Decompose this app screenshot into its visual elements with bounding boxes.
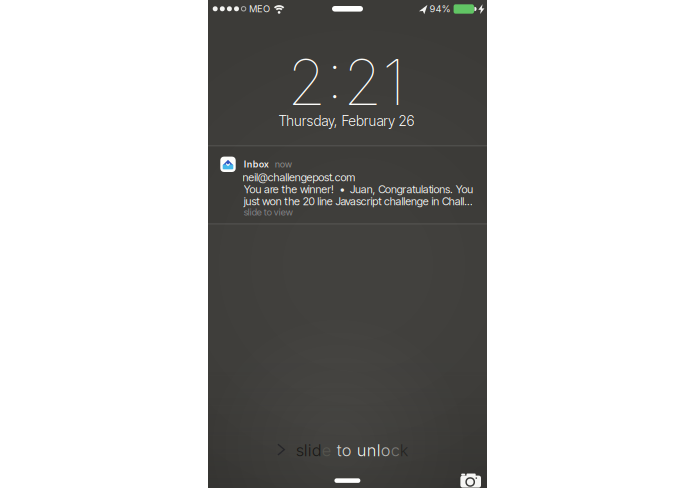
staticText: e (322, 440, 332, 460)
button[interactable]: Inbox (208, 145, 487, 224)
staticText: now (275, 159, 292, 170)
staticText: just won the 20 line Javascript challeng… (244, 195, 473, 208)
button[interactable]: Camera (458, 470, 484, 490)
staticText: to (332, 440, 357, 460)
staticText: o (381, 440, 391, 460)
button[interactable]: Slide to unlock (274, 441, 410, 459)
staticText: 94% (429, 3, 450, 14)
staticText: k (400, 440, 409, 460)
staticText: slide to view (244, 207, 293, 218)
staticText: slid (296, 440, 322, 460)
staticText: Inbox (244, 159, 269, 170)
staticText: neil@challengepost.com (242, 171, 355, 184)
staticText: c (391, 440, 400, 460)
staticText: unl (357, 440, 381, 460)
staticText: 2:21 (287, 44, 405, 120)
staticText: You are the winner! • Juan, Congratulati… (244, 183, 473, 196)
staticText: MEO (249, 3, 270, 14)
staticText: Thursday, February 26 (278, 112, 414, 129)
